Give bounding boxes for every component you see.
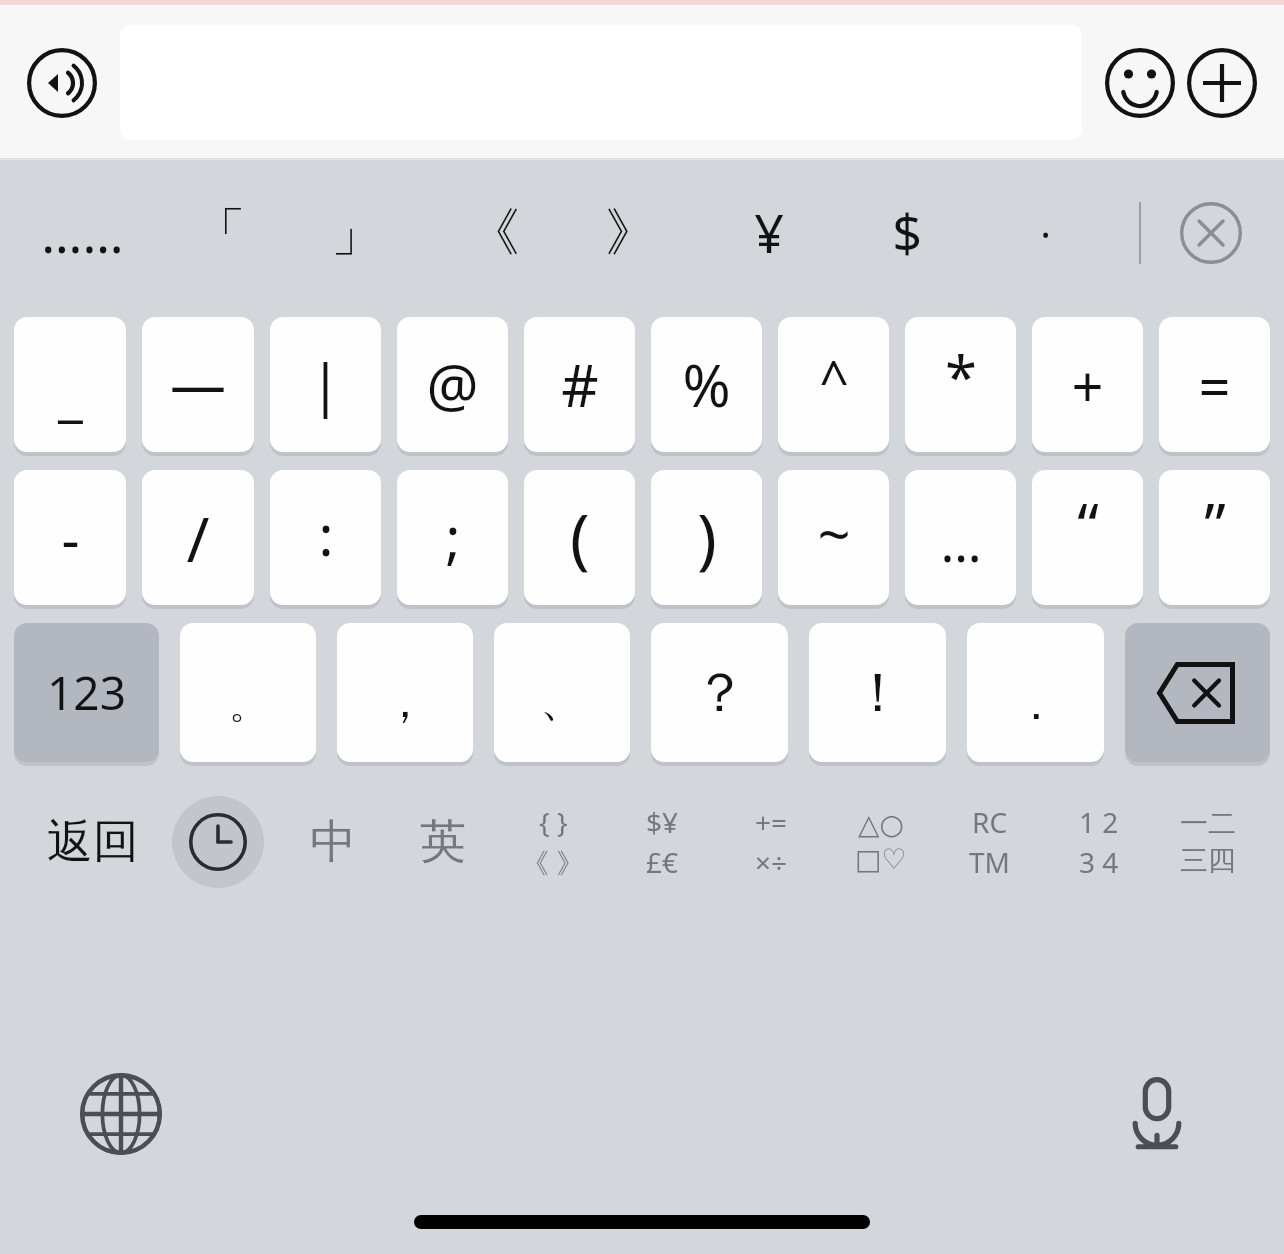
button[interactable]: 英 bbox=[388, 788, 498, 896]
button[interactable]: 返回 bbox=[28, 788, 158, 896]
staticText: { } bbox=[539, 803, 568, 841]
button[interactable]: / bbox=[142, 470, 254, 605]
staticText: 一二 bbox=[1180, 806, 1236, 841]
staticText: ！ bbox=[851, 659, 905, 727]
button[interactable]: ¥ bbox=[700, 160, 838, 305]
button[interactable]: △○ bbox=[826, 788, 935, 896]
staticText: 英 bbox=[420, 813, 466, 871]
button[interactable]: : bbox=[270, 470, 381, 605]
staticText: += bbox=[755, 803, 788, 841]
staticText: - bbox=[61, 500, 80, 576]
button[interactable]: ” bbox=[1159, 470, 1270, 605]
staticText: — bbox=[170, 345, 226, 421]
button[interactable]: 》 bbox=[562, 160, 700, 305]
button[interactable]: = bbox=[1159, 317, 1270, 452]
button[interactable]: $¥ bbox=[608, 788, 717, 896]
button[interactable]: # bbox=[524, 317, 635, 452]
button[interactable]: Recent bbox=[158, 788, 278, 896]
button[interactable]: Backspace bbox=[1125, 623, 1270, 762]
button[interactable]: ~ bbox=[778, 470, 889, 605]
staticText: 三四 bbox=[1180, 843, 1236, 878]
staticText: 「 bbox=[194, 200, 246, 266]
button[interactable]: ( bbox=[524, 470, 635, 605]
button[interactable]: 中 bbox=[278, 788, 388, 896]
button[interactable]: ; bbox=[397, 470, 508, 605]
staticText: ^ bbox=[819, 343, 849, 414]
button[interactable]: Dictation bbox=[1102, 1059, 1212, 1169]
staticText: TM bbox=[969, 843, 1010, 881]
button[interactable]: Close symbols bbox=[1172, 194, 1250, 272]
button[interactable]: ！ bbox=[809, 623, 946, 762]
button[interactable]: Emoji bbox=[1104, 47, 1176, 119]
staticText: ¥ bbox=[754, 197, 784, 268]
button[interactable]: · bbox=[976, 160, 1114, 305]
button[interactable]: 、 bbox=[494, 623, 630, 762]
staticText: ， bbox=[383, 675, 427, 730]
button[interactable]: + bbox=[1032, 317, 1143, 452]
button[interactable]: ) bbox=[651, 470, 762, 605]
staticText: …… bbox=[41, 197, 124, 268]
button[interactable]: “ bbox=[1032, 470, 1143, 605]
staticText: # bbox=[561, 345, 599, 424]
button[interactable]: Switch language bbox=[66, 1059, 176, 1169]
button[interactable]: …… bbox=[14, 160, 151, 305]
staticText: · bbox=[1040, 206, 1051, 260]
staticText: ． bbox=[1014, 677, 1058, 732]
staticText: % bbox=[682, 345, 731, 424]
button[interactable]: @ bbox=[397, 317, 508, 452]
button[interactable]: ， bbox=[337, 623, 473, 762]
staticText: / bbox=[186, 496, 210, 580]
staticText: ; bbox=[445, 498, 461, 574]
staticText: 123 bbox=[47, 661, 126, 724]
button[interactable]: | bbox=[270, 317, 381, 452]
staticText: 中 bbox=[310, 813, 356, 871]
button[interactable]: ^ bbox=[778, 317, 889, 452]
button[interactable]: … bbox=[905, 470, 1016, 605]
button[interactable]: ？ bbox=[651, 623, 788, 762]
button[interactable]: 。 bbox=[180, 623, 316, 762]
staticText: ？ bbox=[693, 659, 747, 727]
staticText: 》 bbox=[605, 200, 657, 266]
staticText: 3 4 bbox=[1079, 843, 1119, 881]
staticText: | bbox=[310, 345, 341, 421]
staticText: 《 bbox=[468, 200, 520, 266]
staticText: = bbox=[1198, 347, 1231, 423]
staticText: : bbox=[318, 496, 334, 572]
staticText: ” bbox=[1204, 483, 1226, 565]
staticText: 《 》 bbox=[521, 843, 585, 881]
staticText: _ bbox=[58, 355, 83, 431]
staticText: @ bbox=[426, 345, 479, 424]
button[interactable]: * bbox=[905, 317, 1016, 452]
staticText: ) bbox=[697, 491, 717, 581]
staticText: ×÷ bbox=[755, 843, 788, 881]
button[interactable]: += bbox=[717, 788, 826, 896]
button[interactable]: $ bbox=[838, 160, 976, 305]
button[interactable]: 123 bbox=[14, 623, 159, 762]
button[interactable]: — bbox=[142, 317, 254, 452]
button[interactable]: 一二 bbox=[1153, 788, 1262, 896]
button[interactable]: ． bbox=[967, 623, 1104, 762]
staticText: £€ bbox=[646, 843, 679, 881]
button[interactable]: % bbox=[651, 317, 762, 452]
staticText: 1 2 bbox=[1079, 803, 1119, 841]
staticText: ( bbox=[570, 491, 590, 581]
staticText: … bbox=[940, 506, 982, 577]
staticText: “ bbox=[1077, 483, 1099, 565]
staticText: □♡ bbox=[855, 843, 907, 876]
button[interactable]: Voice input bbox=[26, 47, 98, 119]
staticText: * bbox=[945, 337, 977, 416]
button[interactable]: 「 bbox=[151, 160, 288, 305]
button[interactable]: 1 2 bbox=[1044, 788, 1153, 896]
button[interactable]: _ bbox=[14, 317, 126, 452]
button[interactable]: RC bbox=[935, 788, 1044, 896]
button[interactable]: { } bbox=[498, 788, 608, 896]
staticText: 返回 bbox=[47, 813, 139, 871]
button[interactable]: 」 bbox=[288, 160, 425, 305]
button[interactable]: 《 bbox=[425, 160, 562, 305]
staticText: 。 bbox=[229, 681, 267, 729]
staticText: $ bbox=[892, 197, 922, 268]
button[interactable]: - bbox=[14, 470, 126, 605]
staticText: RC bbox=[972, 803, 1008, 841]
button[interactable]: More bbox=[1186, 47, 1258, 119]
